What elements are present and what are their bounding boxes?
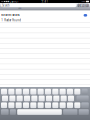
staticText: All Sites: [18, 7, 22, 9]
staticText: 1 Radar Found: [1, 18, 21, 22]
staticText: Carrier: [9, 0, 18, 3]
staticText: Recent Seats: [1, 13, 19, 17]
staticText: Search: [2, 4, 10, 7]
button[interactable]: Cancel: [77, 4, 89, 7]
staticText: 100%: [81, 1, 85, 2]
button[interactable]: 1 Radar Found: [1, 18, 46, 22]
button[interactable]: Details: [84, 14, 87, 17]
staticText: Cancel: [79, 4, 88, 7]
staticText: 9:41: [41, 0, 48, 3]
